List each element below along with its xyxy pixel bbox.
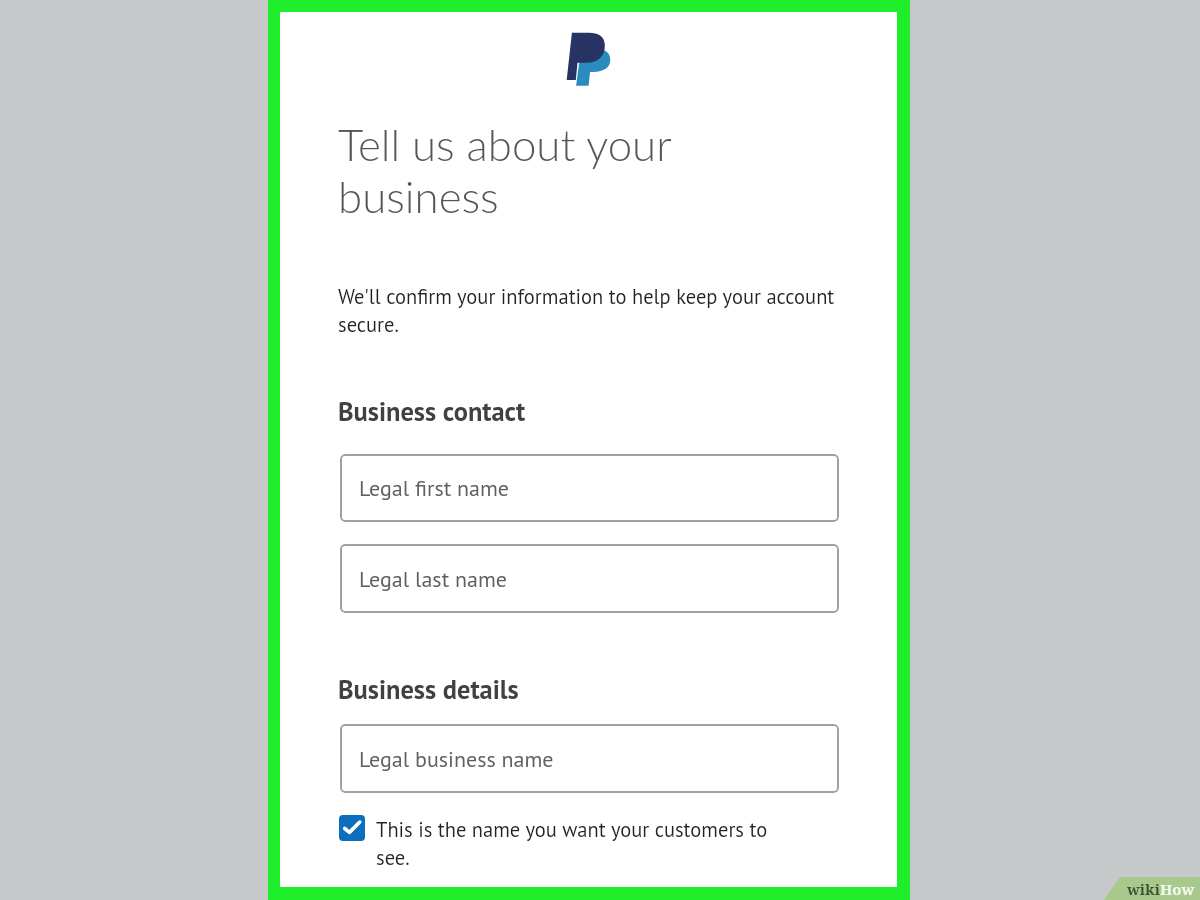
button[interactable]: This is the name you want your customers… <box>376 816 768 871</box>
staticText: Legal first name <box>359 474 509 502</box>
button[interactable]: Legal first name <box>340 454 839 522</box>
button[interactable]: Legal business name <box>340 724 839 793</box>
staticText: Legal business name <box>359 745 554 773</box>
staticText: How <box>1160 879 1195 899</box>
staticText: We'll confirm your information to help k… <box>338 283 835 338</box>
staticText: wiki <box>1127 879 1160 899</box>
button[interactable]: Legal last name <box>340 544 839 613</box>
other: PayPal logo <box>565 32 611 87</box>
staticText: Business contact <box>338 394 526 428</box>
staticText: Legal last name <box>359 565 507 593</box>
staticText: Tell us about your business <box>338 118 672 222</box>
staticText: Business details <box>338 672 519 706</box>
button[interactable]: This is the name you want your customers… <box>339 815 365 841</box>
